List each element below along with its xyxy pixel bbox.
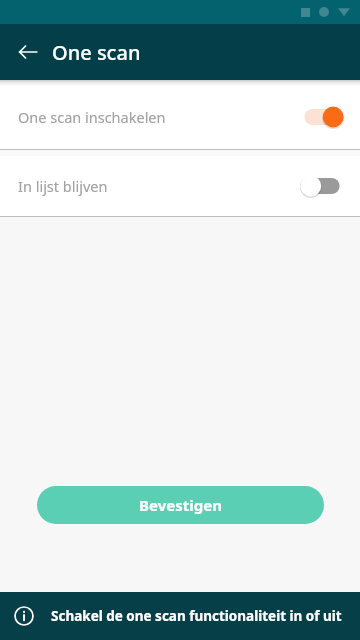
button[interactable]: One scan inschakelen — [0, 85, 360, 149]
button[interactable]: Toggle on — [300, 104, 344, 130]
staticText: Schakel de one scan functionaliteit in o… — [51, 607, 342, 625]
staticText: Bevestigen — [139, 495, 222, 515]
button[interactable]: Schakel de one scan functionaliteit in o… — [0, 592, 360, 640]
button[interactable]: Back — [8, 32, 48, 72]
button[interactable]: Toggle off — [300, 173, 344, 199]
staticText: One scan — [52, 39, 141, 66]
button[interactable]: In lijst blijven — [0, 156, 360, 216]
button[interactable]: Bevestigen — [37, 486, 324, 524]
staticText: In lijst blijven — [18, 176, 300, 196]
staticText: One scan inschakelen — [18, 107, 300, 127]
